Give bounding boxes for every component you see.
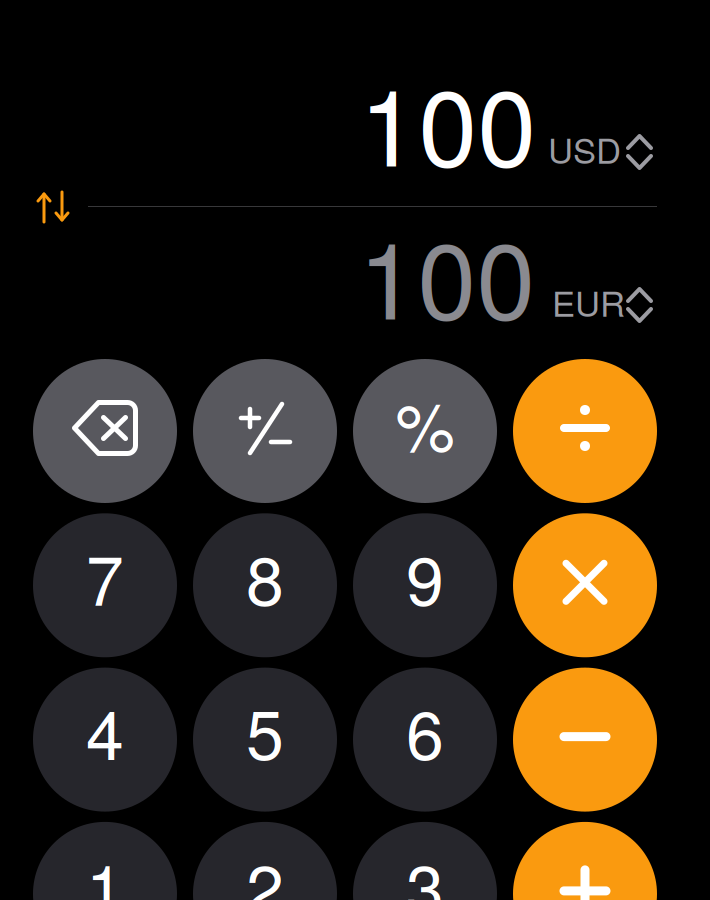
button[interactable]: Divide bbox=[513, 359, 657, 503]
button[interactable]: 2 bbox=[193, 822, 337, 900]
button[interactable]: 9 bbox=[353, 513, 497, 657]
button[interactable]: Percent bbox=[353, 359, 497, 503]
staticText: 4 bbox=[86, 682, 124, 779]
staticText: 1 bbox=[86, 836, 124, 900]
button[interactable]: 1 bbox=[33, 822, 177, 900]
staticText: USD bbox=[548, 124, 621, 174]
button[interactable]: Plus bbox=[513, 822, 657, 900]
staticText: 7 bbox=[86, 528, 124, 625]
button[interactable]: 5 bbox=[193, 668, 337, 812]
button[interactable]: Select EUR bbox=[550, 268, 660, 326]
button[interactable]: Plus minus bbox=[193, 359, 337, 503]
button[interactable]: Minus bbox=[513, 668, 657, 812]
button[interactable]: 6 bbox=[353, 668, 497, 812]
button[interactable]: Swap currencies bbox=[28, 183, 79, 231]
staticText: 5 bbox=[246, 682, 284, 779]
button[interactable]: 4 bbox=[33, 668, 177, 812]
staticText: EUR bbox=[552, 277, 625, 327]
button[interactable]: Multiply bbox=[513, 513, 657, 657]
button[interactable]: 7 bbox=[33, 513, 177, 657]
staticText: % bbox=[395, 375, 454, 471]
button[interactable]: Select USD bbox=[546, 115, 656, 173]
button[interactable]: Amount 100 USD bbox=[363, 69, 533, 173]
button[interactable]: Converted amount 100 EUR bbox=[362, 222, 532, 326]
staticText: 6 bbox=[406, 682, 444, 779]
button[interactable]: 8 bbox=[193, 513, 337, 657]
staticText: 8 bbox=[246, 528, 284, 625]
button[interactable]: 3 bbox=[353, 822, 497, 900]
staticText: 9 bbox=[406, 528, 444, 625]
staticText: 100 bbox=[359, 46, 536, 196]
staticText: 2 bbox=[246, 836, 284, 900]
staticText: 3 bbox=[406, 836, 444, 900]
button[interactable]: Delete bbox=[33, 359, 177, 503]
staticText: 100 bbox=[358, 199, 535, 349]
